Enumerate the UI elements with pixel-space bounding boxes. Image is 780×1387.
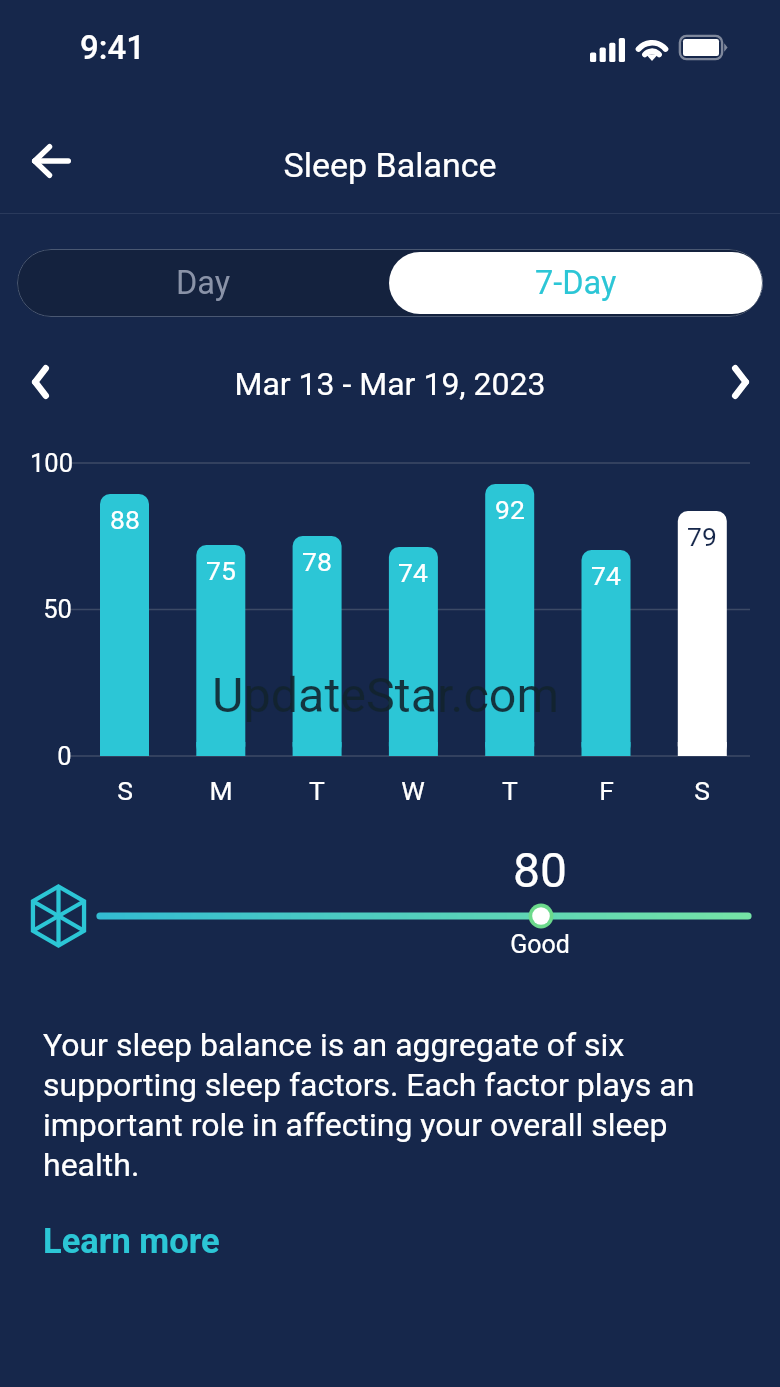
button[interactable]: Back: [13, 123, 89, 199]
button[interactable]: Next week: [713, 355, 767, 409]
staticText: Good: [510, 930, 570, 959]
staticText: Mar 13 - Mar 19, 2023: [234, 365, 546, 403]
staticText: F: [599, 775, 614, 806]
staticText: 88: [110, 504, 140, 535]
button[interactable]: Previous week: [13, 355, 67, 409]
staticText: S: [117, 775, 133, 806]
staticText: 80: [513, 842, 567, 898]
staticText: T: [502, 775, 518, 806]
staticText: 78: [302, 546, 332, 577]
staticText: 7-Day: [535, 264, 617, 302]
staticText: W: [401, 775, 425, 806]
staticText: 79: [687, 521, 717, 552]
button[interactable]: 7-Day: [389, 252, 763, 314]
staticText: T: [309, 775, 325, 806]
staticText: 75: [206, 555, 236, 586]
staticText: Your sleep balance is an aggregate of si…: [43, 1026, 703, 1183]
button[interactable]: Day: [17, 249, 389, 317]
staticText: M: [209, 775, 233, 806]
staticText: UpdateStar.com: [212, 667, 559, 724]
staticText: Day: [176, 264, 231, 302]
staticText: 74: [398, 557, 428, 588]
staticText: 92: [495, 494, 525, 525]
staticText: 74: [591, 560, 621, 591]
staticText: 50: [43, 594, 72, 624]
staticText: Sleep Balance: [283, 145, 497, 185]
button[interactable]: Learn more: [43, 1221, 220, 1261]
staticText: 0: [57, 741, 72, 771]
staticText: 9:41: [80, 28, 145, 67]
staticText: Learn more: [43, 1221, 220, 1261]
staticText: S: [694, 775, 710, 806]
staticText: 100: [30, 448, 73, 478]
